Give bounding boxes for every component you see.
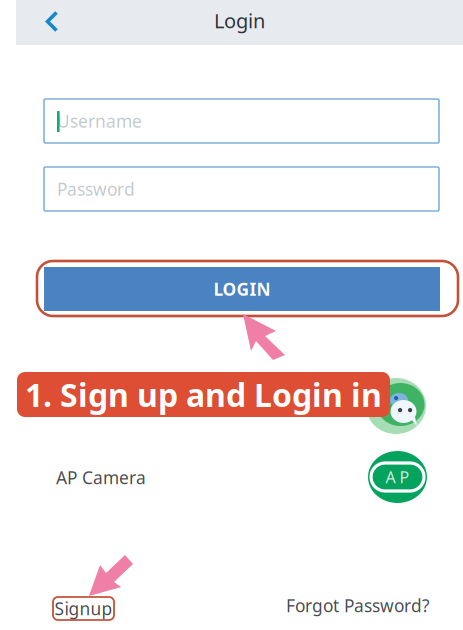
staticText: LOGIN [213,277,270,300]
staticText: Login [214,7,265,34]
staticText: 1. Sign up and Login in [25,373,382,416]
staticText: Password [57,177,135,200]
staticText: Username [57,109,142,132]
staticText: Forgot Password? [286,594,430,617]
staticText: Signup [54,597,112,620]
button[interactable]: Signup [53,597,114,620]
button[interactable]: Forgot Password? [286,594,430,617]
button[interactable]: LOGIN [44,267,440,311]
staticText: A P [385,466,409,488]
button[interactable]: Back [32,0,72,44]
staticText: AP Camera [56,466,146,489]
